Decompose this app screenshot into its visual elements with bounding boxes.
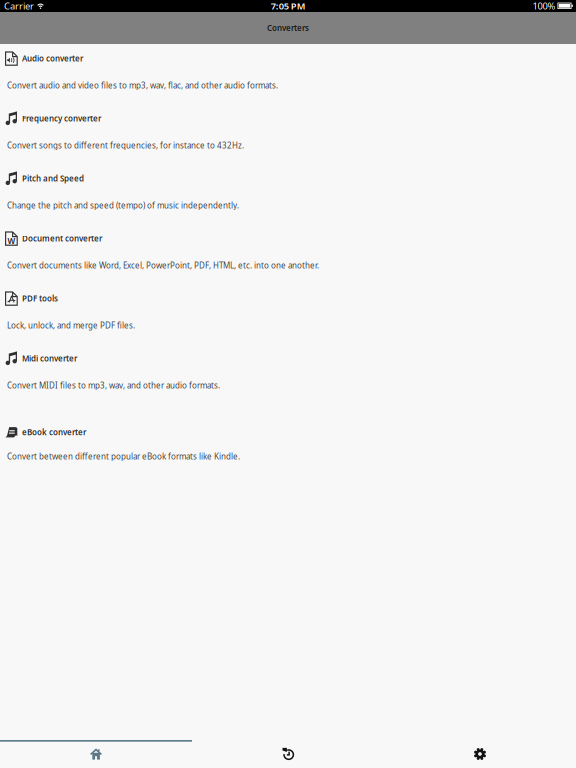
button[interactable]: Midi converter: [0, 344, 576, 404]
button[interactable]: Settings: [384, 742, 576, 766]
button[interactable]: PDF tools: [0, 284, 576, 344]
staticText: Convert songs to different frequencies, …: [7, 140, 244, 151]
button[interactable]: eBook converter: [0, 404, 576, 479]
staticText: Convert between different popular eBook …: [7, 451, 240, 462]
button[interactable]: History: [192, 742, 384, 766]
staticText: Document converter: [22, 233, 102, 244]
button[interactable]: Home: [0, 742, 192, 766]
staticText: Pitch and Speed: [22, 173, 84, 184]
button[interactable]: Frequency converter: [0, 104, 576, 164]
staticText: W: [7, 236, 15, 246]
staticText: Frequency converter: [22, 113, 101, 124]
staticText: Lock, unlock, and merge PDF files.: [7, 320, 135, 331]
staticText: 7:05 PM: [271, 0, 306, 12]
staticText: Converters: [267, 23, 309, 33]
staticText: Change the pitch and speed (tempo) of mu…: [7, 200, 239, 211]
staticText: eBook converter: [22, 427, 86, 437]
staticText: Carrier: [4, 0, 34, 12]
staticText: Convert audio and video files to mp3, wa…: [7, 80, 278, 91]
staticText: Audio converter: [22, 53, 83, 64]
button[interactable]: Audio converter: [0, 44, 576, 104]
staticText: Convert documents like Word, Excel, Powe…: [7, 260, 319, 271]
staticText: Midi converter: [22, 353, 77, 364]
staticText: PDF tools: [22, 293, 58, 304]
button[interactable]: Pitch and Speed: [0, 164, 576, 224]
staticText: Convert MIDI files to mp3, wav, and othe…: [7, 380, 220, 391]
staticText: 100%: [532, 0, 555, 12]
button[interactable]: W: [0, 224, 576, 284]
